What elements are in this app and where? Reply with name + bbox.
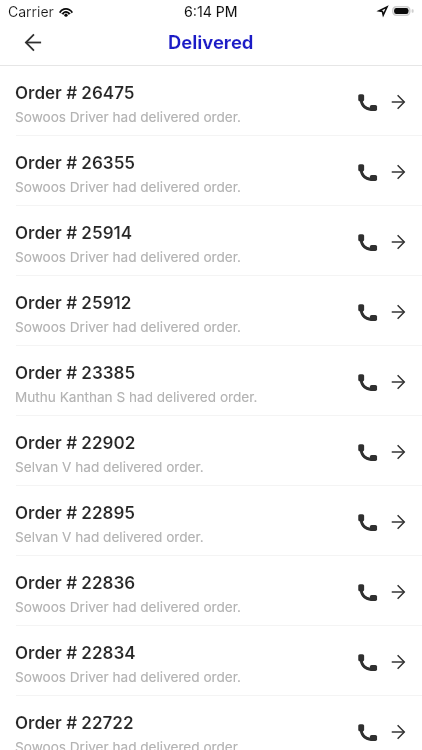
button[interactable]: Order # 22722 — [0, 696, 422, 750]
staticText: Order # 22836 — [15, 573, 136, 594]
button[interactable]: Order # 23385 — [0, 346, 422, 416]
button[interactable]: Call — [344, 153, 382, 191]
staticText: 6:14 PM — [184, 3, 238, 20]
staticText: Order # 25914 — [15, 223, 133, 244]
button[interactable]: Open order details — [382, 506, 414, 538]
button[interactable]: Call — [344, 713, 382, 750]
staticText: Sowoos Driver had delivered order. — [15, 739, 241, 750]
staticText: Order # 22722 — [15, 713, 134, 734]
button[interactable]: Open order details — [382, 296, 414, 328]
button[interactable]: Open order details — [382, 366, 414, 398]
staticText: Order # 23385 — [15, 363, 136, 384]
button[interactable]: Open order details — [382, 436, 414, 468]
button[interactable]: Order # 26355 — [0, 136, 422, 206]
staticText: Sowoos Driver had delivered order. — [15, 249, 241, 265]
button[interactable]: Order # 22895 — [0, 486, 422, 556]
button[interactable]: Call — [344, 83, 382, 121]
staticText: Carrier — [8, 3, 54, 20]
button[interactable]: Call — [344, 503, 382, 541]
button[interactable]: Back — [11, 23, 55, 62]
staticText: Delivered — [168, 31, 254, 53]
button[interactable]: Order # 25914 — [0, 206, 422, 276]
staticText: Sowoos Driver had delivered order. — [15, 599, 241, 615]
button[interactable]: Call — [344, 573, 382, 611]
button[interactable]: Open order details — [382, 716, 414, 748]
button[interactable]: Call — [344, 363, 382, 401]
staticText: Sowoos Driver had delivered order. — [15, 669, 241, 685]
staticText: Selvan V had delivered order. — [15, 529, 204, 545]
button[interactable]: Open order details — [382, 156, 414, 188]
staticText: Sowoos Driver had delivered order. — [15, 179, 241, 195]
staticText: Order # 26475 — [15, 83, 135, 104]
button[interactable]: Open order details — [382, 646, 414, 678]
button[interactable]: Order # 22902 — [0, 416, 422, 486]
button[interactable]: Call — [344, 293, 382, 331]
staticText: Sowoos Driver had delivered order. — [15, 109, 241, 125]
staticText: Muthu Kanthan S had delivered order. — [15, 389, 258, 405]
staticText: Order # 22902 — [15, 433, 136, 454]
button[interactable]: Call — [344, 433, 382, 471]
button[interactable]: Order # 26475 — [0, 66, 422, 136]
button[interactable]: Call — [344, 223, 382, 261]
staticText: Order # 22834 — [15, 643, 136, 664]
button[interactable]: Order # 22836 — [0, 556, 422, 626]
staticText: Sowoos Driver had delivered order. — [15, 319, 241, 335]
staticText: Order # 25912 — [15, 293, 132, 314]
button[interactable]: Call — [344, 643, 382, 681]
button[interactable]: Order # 22834 — [0, 626, 422, 696]
button[interactable]: Order # 25912 — [0, 276, 422, 346]
staticText: Order # 26355 — [15, 153, 136, 174]
button[interactable]: Open order details — [382, 86, 414, 118]
button[interactable]: Open order details — [382, 226, 414, 258]
staticText: Order # 22895 — [15, 503, 135, 524]
staticText: Selvan V had delivered order. — [15, 459, 204, 475]
button[interactable]: Open order details — [382, 576, 414, 608]
